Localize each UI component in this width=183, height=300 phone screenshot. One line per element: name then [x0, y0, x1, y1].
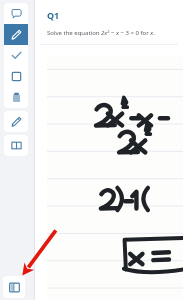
staticText: Q1: [47, 9, 60, 21]
staticText: Solve the equation 2x2 − x − 3 = 0 for x…: [47, 29, 155, 37]
button[interactable]: Library: [4, 135, 28, 156]
button[interactable]: Toggle side panel: [3, 276, 25, 298]
button[interactable]: Draw: [4, 24, 28, 45]
button[interactable]: Check: [4, 45, 28, 66]
button[interactable]: Comment: [4, 3, 28, 24]
button[interactable]: Highlighter: [4, 111, 28, 132]
button[interactable]: Eraser: [4, 87, 28, 108]
button[interactable]: Shape: [4, 66, 28, 87]
